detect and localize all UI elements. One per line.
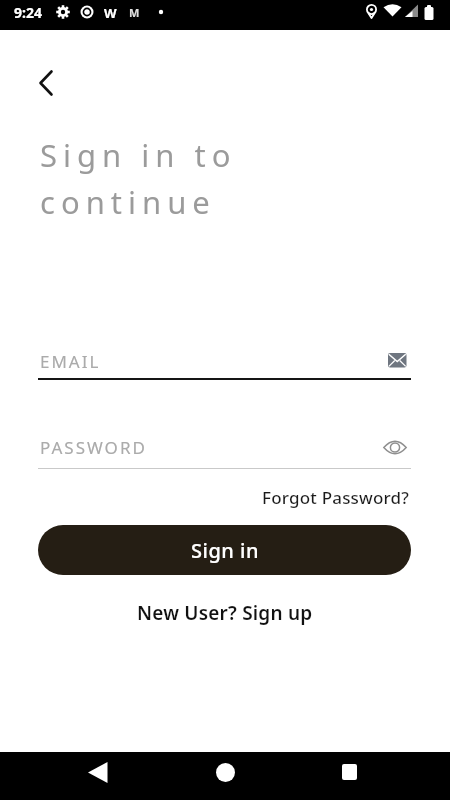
button[interactable]: Forgot Password? <box>262 486 410 509</box>
staticText: Sign in <box>191 537 259 564</box>
button[interactable] <box>33 70 59 96</box>
staticText: W <box>104 4 117 22</box>
button[interactable] <box>74 748 122 796</box>
button[interactable]: EMAIL <box>38 343 411 383</box>
button[interactable] <box>325 748 373 796</box>
staticText: Sign in to continue <box>40 134 237 223</box>
button[interactable]: Sign in <box>38 525 411 575</box>
staticText: New User? Sign up <box>137 600 313 626</box>
button[interactable] <box>201 748 249 796</box>
staticText: Forgot Password? <box>262 486 410 509</box>
staticText: 9:24 <box>14 3 42 22</box>
staticText: PASSWORD <box>40 436 147 459</box>
staticText: EMAIL <box>40 350 101 373</box>
button[interactable]: PASSWORD <box>38 429 411 469</box>
staticText: M <box>129 5 140 20</box>
button[interactable]: New User? Sign up <box>137 600 313 626</box>
